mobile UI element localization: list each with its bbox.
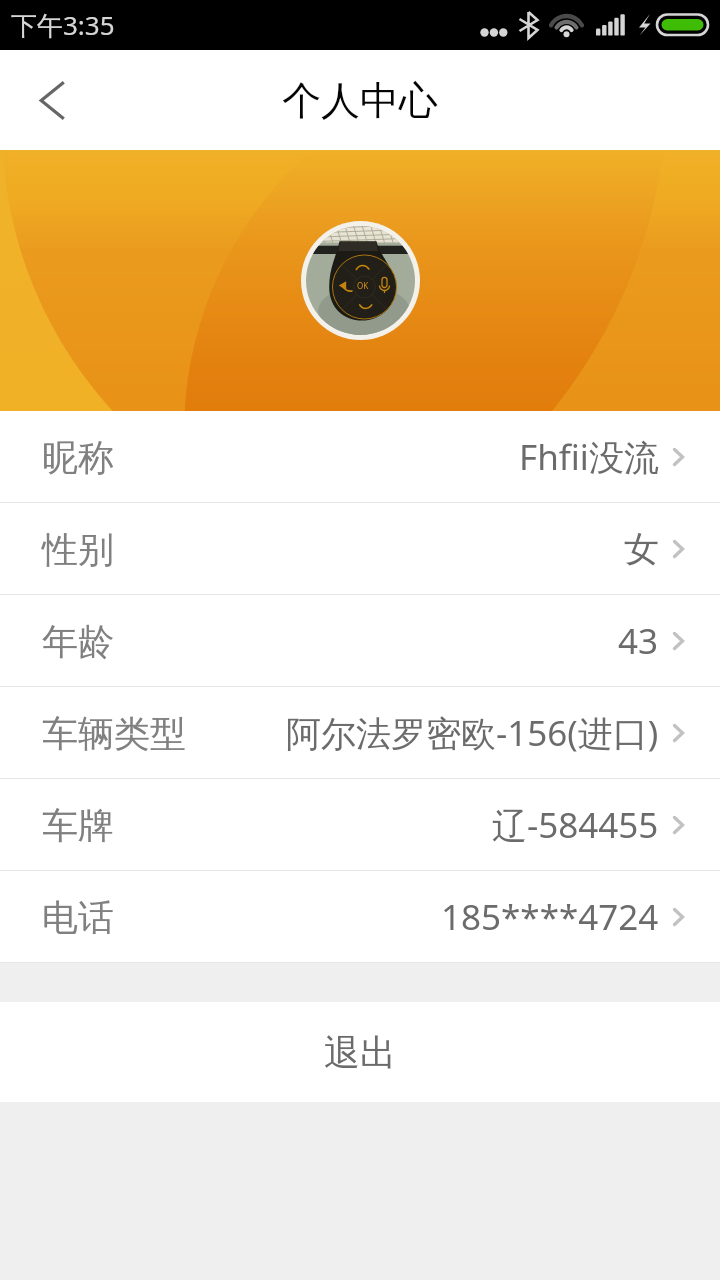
staticText: 年龄 (42, 619, 114, 664)
staticText: 43 (618, 617, 659, 665)
staticText: 车牌 (42, 803, 114, 848)
button[interactable]: Back (0, 50, 104, 150)
staticText: 下午3:35 (11, 7, 115, 43)
staticText: 阿尔法罗密欧-156(进口) (286, 709, 659, 757)
staticText: 女 (624, 527, 659, 571)
button[interactable]: 年龄 (0, 595, 720, 687)
staticText: 电话 (42, 895, 114, 940)
staticText: OK (357, 280, 369, 291)
button[interactable]: 退出 (0, 1002, 720, 1102)
button[interactable]: 车牌 (0, 779, 720, 871)
staticText: 辽-584455 (492, 801, 659, 849)
staticText: 昵称 (42, 435, 114, 480)
staticText: 退出 (324, 1030, 396, 1075)
staticText: Fhfii没流 (519, 433, 659, 481)
staticText: 性别 (42, 527, 114, 572)
button[interactable]: 昵称 (0, 411, 720, 503)
button[interactable]: 电话 (0, 871, 720, 963)
staticText: 185****4724 (441, 893, 659, 941)
staticText: 车辆类型 (42, 711, 186, 756)
staticText: 个人中心 (282, 76, 438, 125)
button[interactable]: 车辆类型 (0, 687, 720, 779)
button[interactable]: 性别 (0, 503, 720, 595)
